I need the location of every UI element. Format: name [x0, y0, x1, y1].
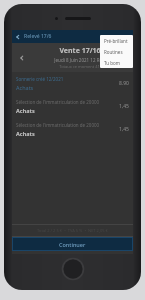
- button[interactable]: Pré-brillant: [100, 35, 133, 46]
- button[interactable]: Relevé 17/6: [24, 30, 119, 43]
- button[interactable]: Routines: [100, 46, 133, 57]
- staticText: Pré-brillant: [104, 38, 128, 44]
- staticText: Relevé 17/6: [24, 33, 52, 40]
- staticText: 1,45: [119, 103, 129, 110]
- staticText: 8.90: [119, 80, 129, 87]
- staticText: Achats: [16, 84, 34, 91]
- staticText: Vente 17/16: [59, 46, 101, 56]
- button[interactable]: Tu bom: [100, 57, 133, 68]
- staticText: Routines: [104, 49, 123, 55]
- button[interactable]: Sélection de l'immatriculation de 20000: [12, 118, 133, 141]
- staticText: Total 2 / 2 5 € • TVA 5 % • NET 2,05 €: [37, 228, 108, 233]
- staticText: Achats: [16, 130, 35, 137]
- staticText: 1,45: [119, 126, 129, 133]
- button[interactable]: Vente 17/16: [12, 43, 133, 72]
- staticText: Sélection de l'immatriculation de 20000: [16, 122, 100, 128]
- staticText: Tu bom: [104, 60, 120, 66]
- staticText: Totaux ce moment 41: [59, 64, 100, 69]
- button[interactable]: Continuer: [12, 237, 133, 251]
- button[interactable]: Back: [15, 30, 21, 43]
- staticText: Jeudi 8 Juin 2021 12 Relé: [54, 57, 106, 63]
- button[interactable]: Home: [61, 257, 85, 281]
- staticText: Achats: [16, 107, 35, 114]
- staticText: Continuer: [59, 241, 86, 248]
- staticText: Sélection de l'immatriculation de 20000: [16, 99, 100, 105]
- button[interactable]: Sonnerie créé 12/2021: [12, 72, 133, 95]
- button[interactable]: Sélection de l'immatriculation de 20000: [12, 95, 133, 118]
- button[interactable]: More options: [123, 30, 129, 43]
- staticText: Sonnerie créé 12/2021: [16, 76, 64, 82]
